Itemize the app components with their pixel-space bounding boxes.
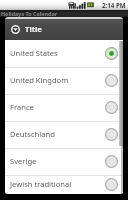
button[interactable]: France <box>5 94 123 121</box>
button[interactable]: Sverige <box>5 148 123 175</box>
staticText: United States <box>10 48 105 58</box>
button[interactable]: Jewish traditional <box>5 175 123 194</box>
staticText: United Kingdom <box>10 75 105 85</box>
staticText: Holidays To Calendar <box>1 10 58 17</box>
staticText: Deutschland <box>10 129 105 139</box>
button[interactable]: United Kingdom <box>5 67 123 94</box>
button[interactable]: Choose holiday set <box>5 17 123 40</box>
button[interactable]: Deutschland <box>5 121 123 148</box>
staticText: Title <box>25 24 42 34</box>
staticText: France <box>10 102 105 112</box>
button[interactable]: United States <box>5 40 123 67</box>
staticText: Jewish traditional <box>10 179 105 189</box>
staticText: Sverige <box>10 156 105 166</box>
staticText: 2:14 PM <box>102 1 126 9</box>
other: Choose holiday set <box>11 25 20 34</box>
